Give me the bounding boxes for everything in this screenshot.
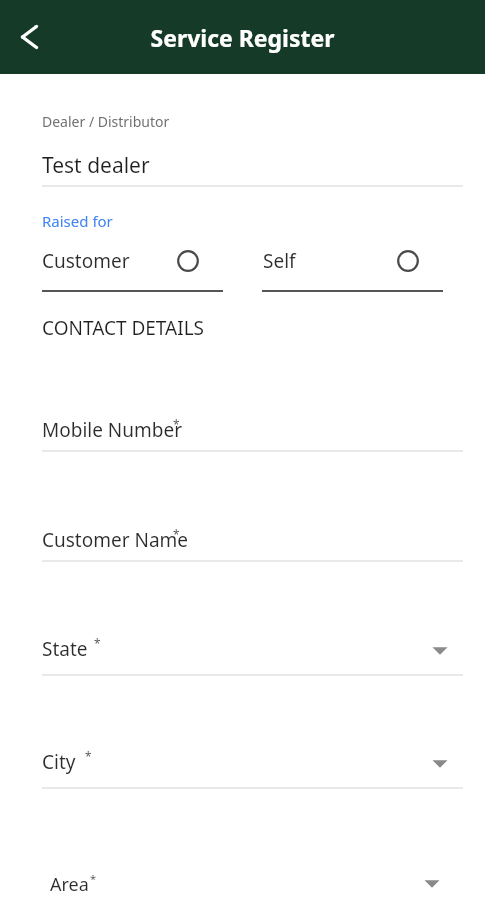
staticText: * [94,635,101,651]
button[interactable]: Open dropdown [426,637,454,665]
button[interactable] [42,408,463,454]
staticText: * [173,416,180,432]
staticText: Test dealer [42,151,150,180]
staticText: * [90,871,97,886]
button[interactable] [42,626,463,674]
button[interactable]: Select Self [392,245,424,277]
button[interactable]: Back [8,17,48,57]
button[interactable] [42,518,463,564]
staticText: Dealer / Distributor [42,112,170,131]
staticText: Mobile Number [42,417,183,443]
staticText: Area [50,872,89,897]
staticText: * [173,526,180,542]
button[interactable]: Select Customer [172,245,204,277]
button[interactable]: Open dropdown [426,750,454,778]
staticText: City [42,749,76,775]
staticText: Self [263,248,296,274]
button[interactable] [50,862,450,900]
button[interactable] [42,240,224,284]
staticText: CONTACT DETAILS [42,315,205,341]
staticText: Service Register [150,22,335,53]
staticText: Customer [42,248,130,274]
staticText: Raised for [42,211,113,231]
button[interactable] [42,740,463,788]
staticText: Customer Name [42,527,189,553]
staticText: * [85,748,92,764]
button[interactable] [262,240,444,284]
staticText: State [42,636,88,662]
button[interactable]: Open dropdown [418,870,446,898]
